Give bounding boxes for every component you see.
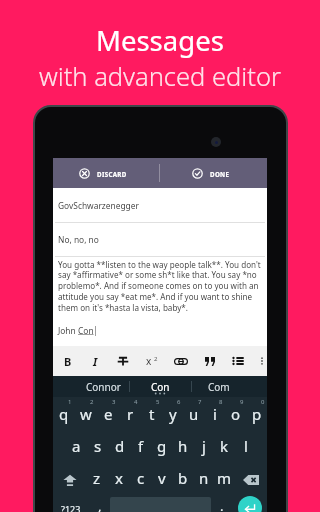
button[interactable]: Enter [238,496,262,512]
staticText: f [138,436,144,456]
button[interactable]: l [235,429,256,461]
staticText: e [104,404,113,424]
staticText: x [146,354,152,366]
staticText: s [94,436,102,456]
staticText: i [213,404,217,424]
staticText: I [93,354,98,369]
button[interactable]: x [108,461,130,493]
staticText: ?123 [61,503,81,512]
staticText: 5 [156,398,160,406]
button[interactable]: b [172,461,193,493]
button[interactable]: 2 [75,397,97,429]
staticText: n [199,468,209,488]
button[interactable]: j [193,429,214,461]
staticText: with advanced editor [39,59,282,94]
button[interactable]: Con [129,376,191,397]
button[interactable]: 3 [97,397,119,429]
button[interactable]: Com [191,376,267,397]
staticText: B [64,354,72,369]
button[interactable]: Comma [89,493,110,512]
staticText: b [178,468,188,488]
staticText: 2 [90,398,94,406]
button[interactable]: ?123 [53,493,89,512]
button[interactable]: Bulleted list [225,346,251,376]
staticText: Con [151,380,170,394]
staticText: Connor [86,380,121,394]
staticText: 2 [154,355,158,363]
button[interactable]: s [87,429,109,461]
staticText: v [158,468,166,488]
button[interactable]: Link [168,346,194,376]
button[interactable]: c [130,461,151,493]
button[interactable]: 5 [141,397,162,429]
staticText: John [58,325,78,336]
button[interactable]: 0 [246,397,267,429]
button[interactable]: g [151,429,172,461]
button[interactable]: DISCARD [53,158,159,188]
staticText: q [59,404,69,424]
button[interactable]: k [214,429,235,461]
button[interactable]: 4 [119,397,141,429]
button[interactable]: Connor [53,376,129,397]
staticText: No, no, no [58,234,99,245]
staticText: DONE [210,170,230,178]
button[interactable]: Italic [82,346,108,376]
staticText: You gotta **listen to the way people tal… [58,259,263,314]
button[interactable]: More formatting options [256,346,268,376]
staticText: 0 [261,398,265,406]
staticText: 1 [68,398,72,406]
button[interactable]: Strikethrough [110,346,136,376]
staticText: g [157,436,167,456]
button[interactable]: Bold [55,346,81,376]
staticText: r [127,404,134,424]
staticText: z [93,468,101,488]
button[interactable]: v [151,461,172,493]
staticText: 6 [177,398,181,406]
staticText: m [217,468,232,488]
button[interactable]: Superscript [139,346,165,376]
button[interactable]: 7 [183,397,204,429]
staticText: y [169,404,177,424]
button[interactable]: f [130,429,151,461]
button[interactable]: m [214,461,235,493]
staticText: 4 [134,398,138,406]
button[interactable]: Shift [53,461,86,493]
button[interactable]: a [65,429,87,461]
staticText: l [244,436,248,456]
staticText: d [115,436,125,456]
staticText: x [115,468,123,488]
staticText: . [220,497,224,512]
staticText: Con [78,325,94,336]
staticText: u [189,404,199,424]
button[interactable]: 1 [53,397,75,429]
button[interactable]: n [193,461,214,493]
button[interactable]: 8 [204,397,225,429]
staticText: p [252,404,262,424]
button[interactable]: 6 [162,397,183,429]
button[interactable]: 9 [225,397,246,429]
staticText: j [202,436,206,456]
staticText: h [178,436,188,456]
button[interactable]: DONE [160,158,267,188]
staticText: k [220,436,229,456]
staticText: GovSchwarzenegger [58,200,139,211]
button[interactable]: z [86,461,108,493]
button[interactable]: Backspace [235,461,267,493]
staticText: Com [208,380,230,394]
staticText: c [137,468,145,488]
button[interactable]: h [172,429,193,461]
button[interactable]: d [109,429,130,461]
staticText: w [80,404,92,424]
button[interactable]: Quote [197,346,223,376]
staticText: , [98,497,102,512]
staticText: 3 [112,398,116,406]
button[interactable]: Period [211,493,232,512]
staticText: 7 [198,398,202,406]
staticText: a [72,436,81,456]
staticText: t [149,404,155,424]
staticText: DISCARD [97,170,127,178]
staticText: 8 [219,398,223,406]
staticText: Messages [96,22,224,59]
staticText: o [231,404,241,424]
